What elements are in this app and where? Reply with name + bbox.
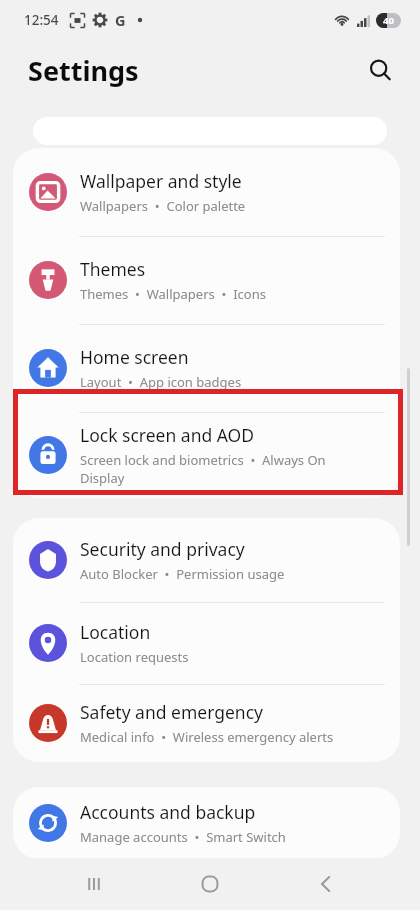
button[interactable]: Home [186,860,234,908]
staticText: Safety and emergency [80,700,263,724]
staticText: Settings [28,52,139,89]
staticText: Wallpapers • Color palette [80,197,246,215]
button[interactable]: Location [13,602,400,684]
staticText: 40 [383,14,394,27]
button[interactable]: Safety and emergency [13,684,400,762]
staticText: Lock screen and AOD [80,423,255,447]
staticText: Security and privacy [80,537,245,561]
staticText: Auto Blocker • Permission usage [80,565,285,583]
staticText: Location requests [80,648,189,666]
staticText: 12:54 [24,11,59,29]
staticText: Wallpaper and style [80,169,242,193]
button[interactable]: Security and privacy [13,518,400,602]
button[interactable]: Lock screen and AOD [13,412,400,498]
staticText: Home screen [80,345,189,369]
staticText: Location [80,620,151,644]
button[interactable]: Recent apps [70,860,118,908]
button[interactable]: Back [302,860,350,908]
staticText: Themes • Wallpapers • Icons [80,285,266,303]
staticText: Display [80,469,125,487]
staticText: Medical info • Wireless emergency alerts [80,728,334,746]
button[interactable]: Search [358,48,402,92]
staticText: Screen lock and biometrics • Always On [80,451,326,469]
staticText: Manage accounts • Smart Switch [80,828,286,846]
staticText: Layout • App icon badges [80,373,242,391]
button[interactable]: Themes [13,236,400,324]
button[interactable]: Accounts and backup [13,787,400,859]
button[interactable]: Home screen [13,324,400,412]
staticText: Themes [80,257,146,281]
button[interactable]: Wallpaper and style [13,148,400,236]
staticText: Accounts and backup [80,800,256,824]
staticText: G [115,10,126,30]
